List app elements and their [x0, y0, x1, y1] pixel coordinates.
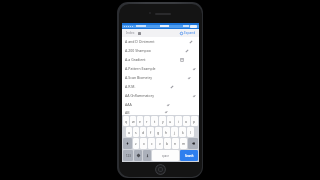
staticText: A-a Gradient [125, 57, 146, 62]
button[interactable]: A-a Gradient [122, 55, 199, 64]
staticText: y [162, 119, 164, 124]
button[interactable]: Dictate [143, 150, 151, 161]
staticText: z [135, 141, 137, 146]
staticText: v [159, 141, 161, 146]
staticText: n [174, 141, 177, 146]
button[interactable]: f [147, 127, 154, 137]
button[interactable]: space [152, 150, 179, 161]
staticText: AB [125, 110, 130, 115]
other: Detail [180, 58, 184, 62]
staticText: q [125, 119, 128, 124]
staticText: Expand [184, 31, 196, 35]
staticText: A-Scan Biometry [125, 75, 153, 80]
button[interactable]: x [140, 138, 147, 149]
staticText: r [146, 119, 148, 124]
button[interactable]: v [156, 138, 163, 149]
button[interactable]: AB [122, 109, 199, 115]
staticText: h [165, 130, 168, 135]
staticText: t [154, 119, 156, 124]
button[interactable]: y [159, 116, 166, 126]
staticText: A-200 Shampoo [125, 48, 151, 53]
button[interactable]: i [175, 116, 182, 126]
button[interactable]: A-200 Shampoo [122, 46, 199, 55]
button[interactable]: Index [125, 31, 136, 35]
other: Detail [189, 40, 193, 44]
button[interactable]: AA (Inflammatory Amyloidosis) [122, 91, 199, 100]
button[interactable]: A and D Ointment [122, 37, 199, 46]
button[interactable]: j [171, 127, 178, 137]
staticText: A.R.M. [125, 84, 136, 89]
other: Detail [192, 67, 196, 71]
staticText: c [151, 141, 153, 146]
staticText: A-Pattern Example and Formula [125, 66, 158, 71]
button[interactable]: A.R.M. [122, 82, 199, 91]
staticText: u [169, 119, 172, 124]
button[interactable]: a [126, 127, 132, 137]
button[interactable]: h [163, 127, 170, 137]
button[interactable]: q [123, 116, 129, 126]
button[interactable]: w [130, 116, 136, 126]
staticText: l [190, 130, 191, 135]
button[interactable]: u [167, 116, 174, 126]
button[interactable]: A-Pattern Example and Formula [122, 64, 199, 73]
button[interactable]: d [140, 127, 146, 137]
button[interactable]: r [144, 116, 150, 126]
button[interactable]: 123 [123, 150, 133, 161]
button[interactable]: Emoji [134, 150, 142, 161]
staticText: a [128, 130, 130, 135]
staticText: x [143, 141, 145, 146]
button[interactable]: l [187, 127, 194, 137]
staticText: 123 [126, 154, 131, 158]
staticText: i [178, 119, 179, 124]
button[interactable]: Shift [123, 138, 132, 149]
button[interactable]: s [133, 127, 139, 137]
staticText: e [139, 119, 141, 124]
button[interactable]: n [172, 138, 179, 149]
button[interactable]: k [179, 127, 186, 137]
staticText: j [174, 130, 175, 135]
staticText: f [150, 130, 152, 135]
other: Detail [185, 49, 189, 53]
other: Detail [192, 94, 196, 98]
button[interactable]: b [164, 138, 171, 149]
button[interactable]: z [133, 138, 139, 149]
staticText: m [182, 141, 186, 146]
button[interactable]: m [180, 138, 187, 149]
staticText: b [166, 141, 169, 146]
button[interactable]: Backspace [188, 138, 198, 149]
button[interactable]: o [183, 116, 190, 126]
staticText: w [132, 119, 135, 124]
button[interactable]: AAA [122, 100, 199, 109]
other: Detail [164, 110, 168, 114]
staticText: AAA [125, 102, 132, 107]
staticText: A and D Ointment [125, 39, 155, 44]
staticText: o [185, 119, 188, 124]
button[interactable]: g [155, 127, 162, 137]
button[interactable]: Filter [138, 32, 141, 35]
button[interactable]: t [151, 116, 158, 126]
staticText: Search [185, 154, 194, 158]
staticText: AA (Inflammatory Amyloidosis) [125, 93, 158, 98]
button[interactable]: c [148, 138, 155, 149]
staticText: k [182, 130, 184, 135]
button[interactable]: A-Scan Biometry [122, 73, 199, 82]
button[interactable]: p [191, 116, 198, 126]
button[interactable]: Expand [180, 31, 196, 35]
staticText: p [193, 119, 196, 124]
staticText: g [157, 130, 160, 135]
staticText: d [142, 130, 145, 135]
other: Detail [166, 103, 170, 107]
other: Detail [170, 85, 174, 89]
button[interactable]: Search [180, 150, 198, 161]
staticText: s [135, 130, 137, 135]
staticText: Index [126, 31, 135, 35]
other: Detail [187, 76, 191, 80]
button[interactable]: Home [155, 164, 166, 175]
staticText: space [162, 154, 170, 158]
button[interactable]: e [137, 116, 143, 126]
